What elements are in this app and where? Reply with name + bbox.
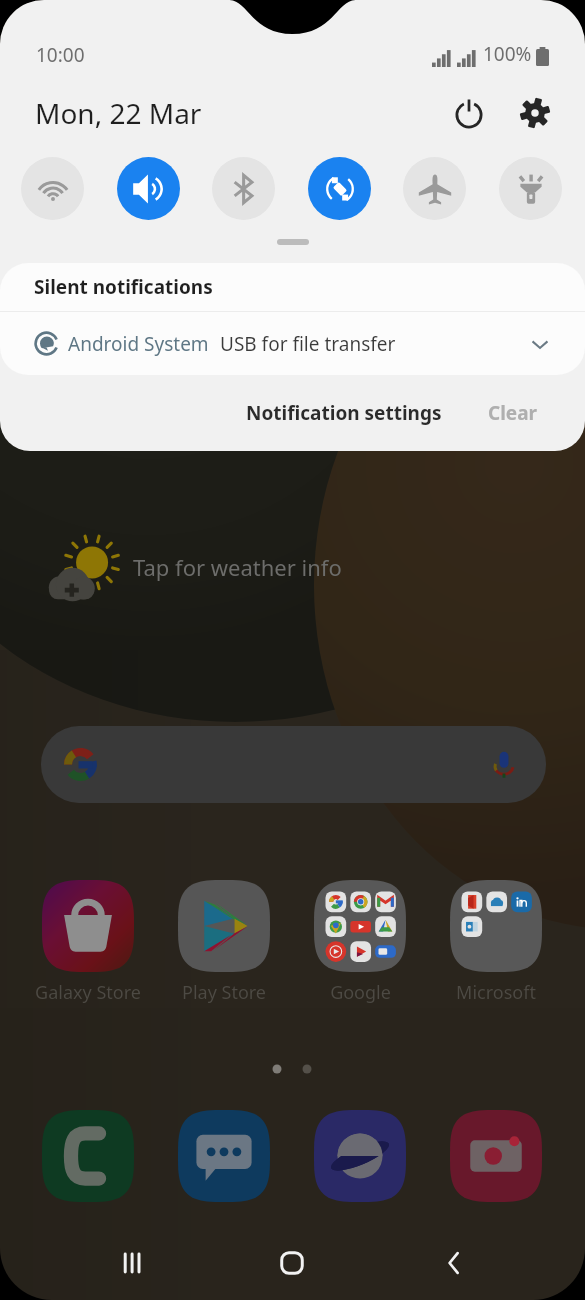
button[interactable]: Power <box>445 89 493 137</box>
staticText: Galaxy Store <box>35 980 141 1005</box>
staticText: 100% <box>483 41 532 67</box>
button[interactable]: Airplane mode <box>403 157 466 220</box>
staticText: Microsoft <box>456 980 536 1005</box>
button[interactable]: Recents <box>50 1226 211 1300</box>
button[interactable]: Flashlight <box>499 157 562 220</box>
button[interactable] <box>42 880 134 972</box>
button[interactable]: Google search <box>41 726 546 803</box>
staticText: Mon, 22 Mar <box>35 94 202 132</box>
staticText: Notification settings <box>246 400 442 426</box>
button[interactable]: Clear <box>488 400 538 426</box>
button[interactable]: Sound <box>117 157 180 220</box>
button[interactable] <box>314 880 406 972</box>
button[interactable]: Wi-Fi <box>21 157 84 220</box>
button[interactable]: Internet <box>314 1110 406 1202</box>
staticText: Android System <box>68 331 209 357</box>
button[interactable]: Silent notifications <box>34 263 585 311</box>
staticText: Play Store <box>182 980 266 1005</box>
button[interactable]: Messages <box>178 1110 270 1202</box>
button[interactable] <box>178 880 270 972</box>
button[interactable]: Tap for weather info <box>48 536 342 602</box>
staticText: USB for file transfer <box>220 331 396 357</box>
button[interactable]: Camera <box>450 1110 542 1202</box>
button[interactable]: Back <box>373 1226 535 1300</box>
staticText: Silent notifications <box>34 274 213 300</box>
button[interactable]: Phone <box>42 1110 134 1202</box>
button[interactable]: Bluetooth <box>212 157 275 220</box>
button[interactable] <box>450 880 542 972</box>
button[interactable]: Home <box>211 1226 373 1300</box>
staticText: 10:00 <box>36 42 85 68</box>
staticText: Tap for weather info <box>133 552 342 582</box>
staticText: Clear <box>488 400 538 426</box>
button[interactable]: Settings <box>511 89 559 137</box>
button[interactable]: Android System <box>34 312 551 375</box>
button[interactable]: Notification settings <box>246 400 442 426</box>
button[interactable]: Auto rotate <box>308 157 371 220</box>
staticText: Google <box>330 980 391 1005</box>
